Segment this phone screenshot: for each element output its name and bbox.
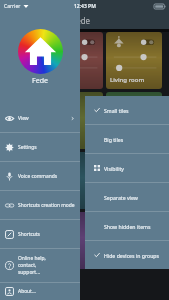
staticText: Office bbox=[110, 196, 127, 204]
button[interactable]: Show hidden items bbox=[85, 212, 169, 240]
staticText: Bathroom bbox=[110, 136, 139, 144]
button[interactable]: Shortcuts creation mode bbox=[0, 191, 80, 219]
staticText: Ergometer bbox=[110, 256, 141, 264]
button[interactable]: Hide devices in groups bbox=[85, 241, 169, 269]
staticText: Shortcuts creation mode bbox=[18, 202, 75, 209]
staticText: Small tiles bbox=[104, 107, 129, 114]
staticText: Big tiles bbox=[104, 136, 124, 143]
staticText: Voice commands bbox=[18, 173, 58, 180]
button[interactable]: Shortcuts bbox=[0, 220, 80, 248]
button[interactable]: Big tiles bbox=[85, 125, 169, 153]
button[interactable]: Office bbox=[106, 152, 162, 209]
staticText: Shortcuts bbox=[18, 231, 40, 238]
staticText: Show hidden items bbox=[104, 223, 151, 230]
button[interactable]: Voice commands bbox=[0, 162, 80, 190]
button[interactable]: View bbox=[0, 104, 80, 132]
button[interactable]: Separate view bbox=[85, 183, 169, 211]
button[interactable]: Settings bbox=[0, 133, 80, 161]
staticText: About... bbox=[18, 288, 36, 295]
button[interactable]: Sitting bbox=[47, 32, 103, 89]
staticText: Fede bbox=[0, 76, 80, 86]
staticText: 12:43 PM bbox=[74, 3, 96, 10]
button[interactable]: Room TV bbox=[47, 212, 103, 269]
button[interactable]: Kitchen bbox=[47, 92, 103, 149]
button[interactable]: Bathroom bbox=[106, 92, 162, 149]
staticText: View bbox=[18, 115, 29, 122]
button[interactable]: Visibility bbox=[85, 154, 169, 182]
button[interactable]: Small tiles bbox=[85, 96, 169, 124]
button[interactable]: Living room bbox=[106, 32, 162, 89]
staticText: Living room bbox=[110, 76, 145, 84]
button[interactable]: Ergometer bbox=[106, 212, 162, 269]
staticText: Online help, contact, support... bbox=[18, 255, 46, 276]
staticText: Carrier bbox=[4, 3, 21, 10]
staticText: Garden bbox=[51, 196, 73, 204]
staticText: Hide devices in groups bbox=[104, 252, 160, 259]
staticText: Fede bbox=[72, 15, 91, 26]
staticText: Separate view bbox=[104, 194, 138, 201]
button[interactable]: About... bbox=[0, 283, 80, 300]
staticText: Visibility bbox=[104, 165, 124, 172]
staticText: Settings bbox=[18, 144, 37, 151]
button[interactable]: Online help, contact, support... bbox=[0, 249, 80, 282]
button[interactable]: Garden bbox=[47, 152, 103, 209]
